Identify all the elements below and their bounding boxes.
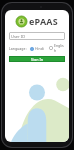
staticText: ePAAS bbox=[29, 15, 58, 27]
staticText: Sign In bbox=[31, 57, 43, 62]
button[interactable]: ePAAS logo bbox=[9, 15, 65, 27]
button[interactable]: User ID bbox=[9, 32, 65, 40]
button[interactable]: Hindi bbox=[30, 46, 44, 51]
staticText: English bbox=[54, 43, 65, 53]
other: ePAAS logo bbox=[16, 16, 27, 27]
staticText: User ID bbox=[11, 34, 26, 39]
button[interactable]: English bbox=[49, 43, 65, 53]
staticText: Language : bbox=[9, 46, 28, 51]
button[interactable]: Sign In bbox=[9, 56, 65, 62]
staticText: Hindi bbox=[35, 46, 44, 51]
